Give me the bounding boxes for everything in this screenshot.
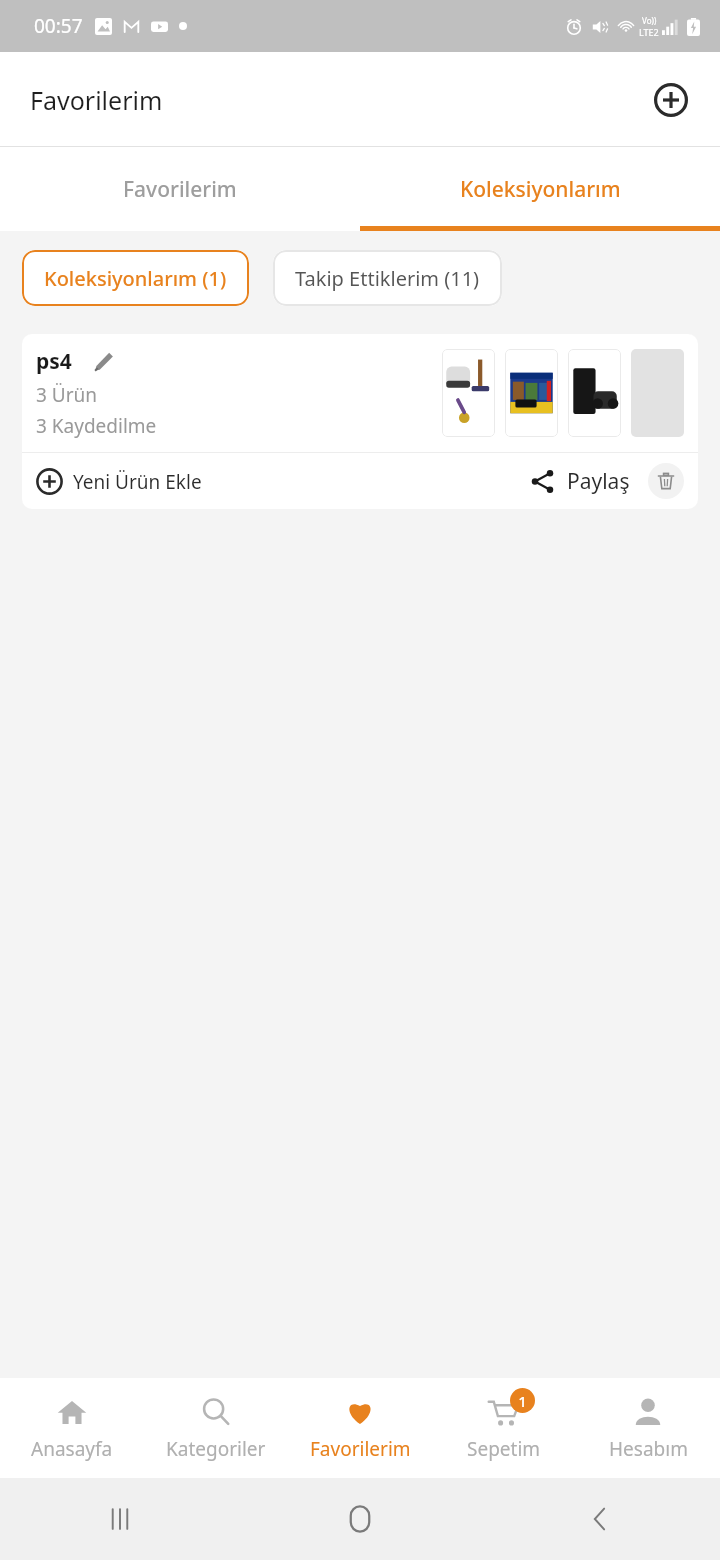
staticText: Favorilerim [123,175,237,204]
button[interactable]: Düzenle [90,349,116,375]
staticText: 3 Kaydedilme [36,413,157,439]
staticText: LTE2 [639,26,659,38]
button[interactable]: Koleksiyonlarım (1) [22,250,249,306]
staticText: Favorilerim [310,1436,411,1462]
button[interactable]: Sil [648,463,684,499]
button[interactable]: Kategoriler [144,1378,288,1478]
staticText: 1 [518,1391,527,1411]
staticText: Sepetim [467,1436,541,1462]
staticText: Favorilerim [30,83,163,117]
button[interactable]: Favorilerim [0,147,360,231]
button[interactable]: Favorilerim [288,1378,432,1478]
button[interactable]: Koleksiyonlarım [360,147,720,231]
staticText: Yeni Ürün Ekle [73,469,202,495]
button[interactable] [505,349,558,437]
staticText: Vo)) [642,15,657,26]
staticText: Koleksiyonlarım [460,175,621,204]
staticText: 3 Ürün [36,382,98,408]
staticText: ps4 [36,347,72,376]
button[interactable]: Geri [573,1492,627,1546]
button[interactable]: Anasayfa [0,1378,144,1478]
button[interactable]: Paylaş [526,467,634,496]
button[interactable]: Takip Ettiklerim (11) [273,250,502,306]
staticText: Paylaş [567,467,630,496]
staticText: Kategoriler [166,1436,266,1462]
button[interactable]: 1 [432,1378,576,1478]
staticText: Hesabım [609,1436,688,1462]
button[interactable]: ps4 [22,334,698,452]
staticText: Koleksiyonlarım (1) [44,265,227,292]
button[interactable]: Hesabım [576,1378,720,1478]
button[interactable]: Ana ekran [333,1492,387,1546]
staticText: 00:57 [34,13,83,39]
button[interactable] [568,349,621,437]
button[interactable] [442,349,495,437]
button[interactable]: Yeni koleksiyon ekle [648,77,694,123]
button[interactable]: Yeni Ürün Ekle [36,468,210,495]
button[interactable]: Son uygulamalar [93,1492,147,1546]
staticText: Takip Ettiklerim (11) [295,265,480,292]
staticText: Anasayfa [31,1436,113,1462]
